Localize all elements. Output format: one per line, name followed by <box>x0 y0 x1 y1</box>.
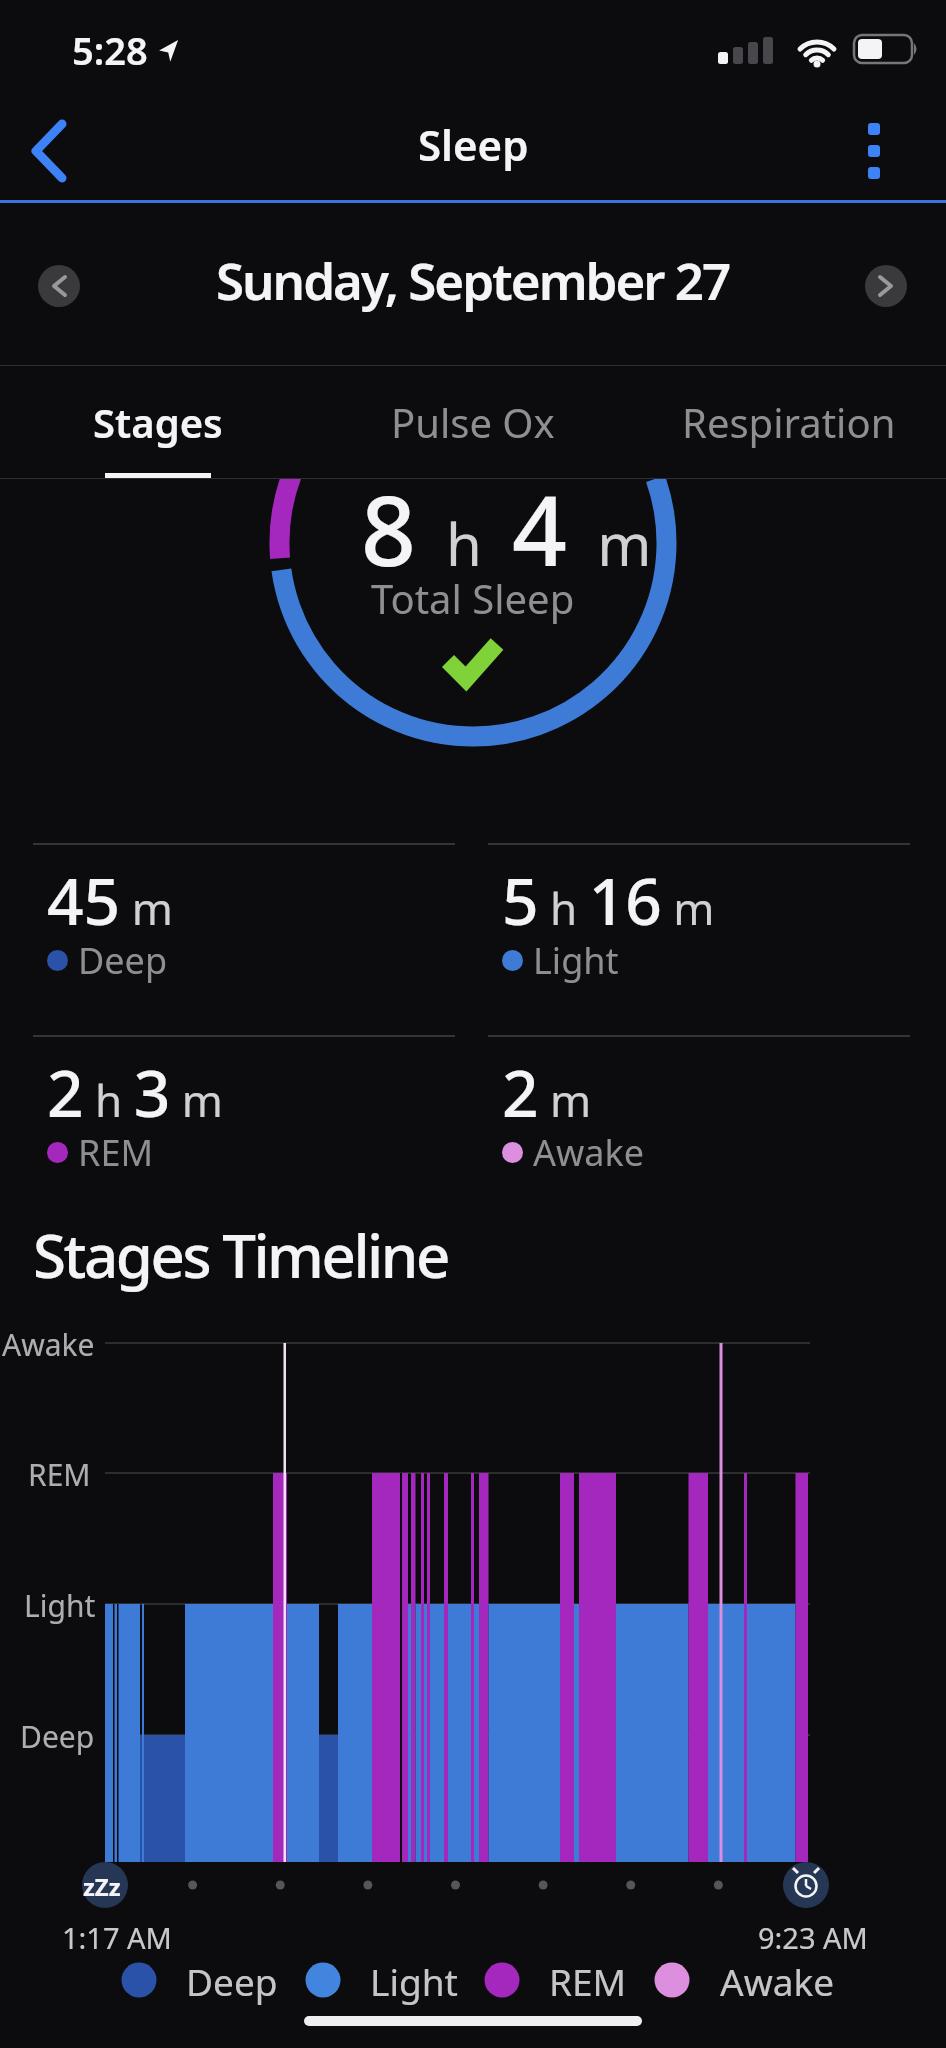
staticText: Light <box>370 1956 458 2006</box>
staticText: REM <box>549 1956 627 2006</box>
staticText: 2 m <box>502 1049 592 1136</box>
button[interactable]: 5 h 16 m <box>488 843 910 1035</box>
staticText: Awake <box>720 1956 835 2006</box>
staticText: 1:17 AM <box>62 1918 172 1957</box>
staticText: Awake <box>2 1324 95 1365</box>
button[interactable]: 45 m <box>33 843 455 1035</box>
staticText: Sunday, September 27 <box>216 245 730 314</box>
button[interactable] <box>14 116 84 186</box>
staticText: 2 h 3 m <box>47 1049 223 1136</box>
staticText: Light <box>24 1585 96 1626</box>
staticText: Stages <box>93 395 223 449</box>
staticText: Total Sleep <box>371 571 575 625</box>
staticText: Awake <box>533 1128 645 1177</box>
staticText: REM <box>78 1128 154 1177</box>
button[interactable]: Stages <box>53 366 263 478</box>
staticText: Respiration <box>682 395 896 449</box>
staticText: 5 h 16 m <box>502 857 715 944</box>
button[interactable]: 2 h 3 m <box>33 1035 455 1227</box>
button[interactable] <box>38 265 80 307</box>
staticText: Deep <box>186 1956 278 2006</box>
button[interactable] <box>846 116 902 186</box>
staticText: Sleep <box>418 116 529 173</box>
staticText: Deep <box>20 1716 95 1757</box>
staticText: 8 h 4 m <box>361 479 652 594</box>
button[interactable]: 2 m <box>488 1035 910 1227</box>
button[interactable]: Respiration <box>644 366 934 478</box>
staticText: Pulse Ox <box>391 395 555 449</box>
staticText: 45 m <box>47 857 173 944</box>
staticText: 5:28 <box>72 24 148 76</box>
button[interactable]: Pulse Ox <box>368 366 578 478</box>
button[interactable] <box>865 265 907 307</box>
staticText: Deep <box>78 936 168 985</box>
staticText: 9:23 AM <box>758 1918 868 1957</box>
staticText: zZz <box>83 1870 121 1903</box>
staticText: REM <box>28 1454 91 1495</box>
staticText: Stages Timeline <box>33 1214 448 1296</box>
staticText: Light <box>533 936 619 985</box>
